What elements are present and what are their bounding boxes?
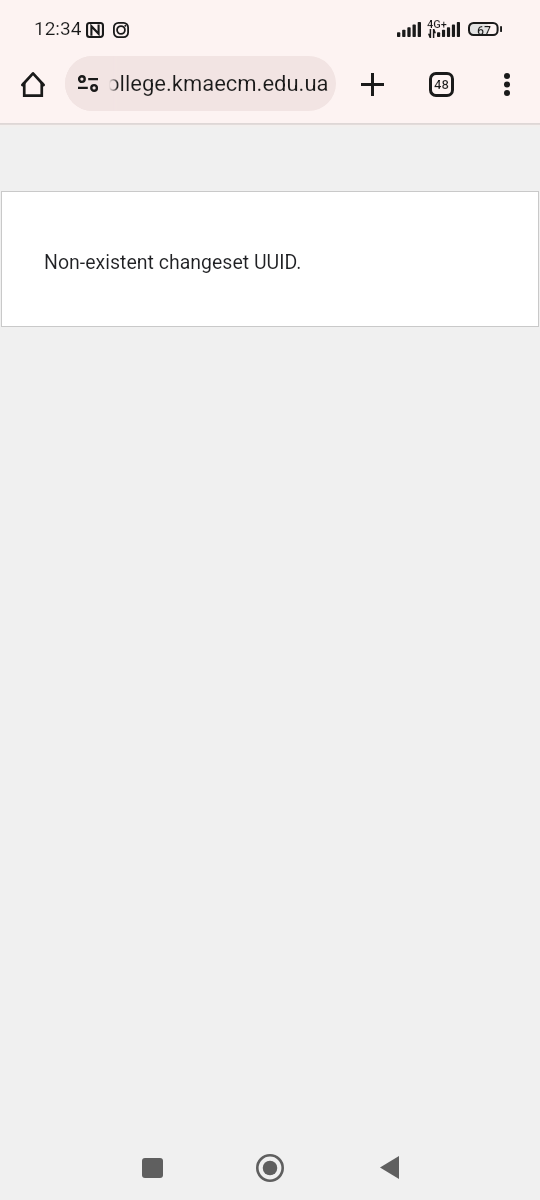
staticText: ollege.kmaecm.edu.ua <box>107 71 329 97</box>
button[interactable]: Switch tabs, 48 open <box>417 60 465 108</box>
button[interactable]: Home <box>246 1144 294 1192</box>
button[interactable]: More options <box>483 60 531 108</box>
button[interactable]: Recent apps <box>128 1144 176 1192</box>
button[interactable]: Home <box>9 60 57 108</box>
staticText: 4G+ <box>427 18 447 31</box>
staticText: 67 <box>477 23 492 37</box>
staticText: Non-existent changeset UUID. <box>44 251 302 274</box>
button[interactable]: ollege.kmaecm.edu.ua <box>65 56 336 111</box>
staticText: 12:34 <box>34 17 82 39</box>
staticText: 48 <box>434 77 449 92</box>
button[interactable]: Back <box>365 1143 413 1191</box>
button[interactable]: New tab <box>348 60 396 108</box>
